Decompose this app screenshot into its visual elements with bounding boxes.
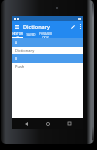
button[interactable]: Edit bbox=[69, 21, 77, 32]
staticText: HISTORY bbox=[12, 32, 23, 38]
button[interactable]: More options bbox=[77, 21, 83, 32]
button[interactable]: Recent apps bbox=[62, 118, 76, 129]
staticText: Push bbox=[15, 64, 25, 69]
button[interactable]: Navigation menu bbox=[13, 21, 21, 32]
button[interactable]: Push bbox=[12, 63, 83, 70]
staticText: PHRASEBOOK bbox=[38, 32, 53, 38]
staticText: SAVED bbox=[26, 33, 36, 37]
staticText: Dictionary bbox=[23, 23, 50, 30]
staticText: A bbox=[15, 41, 18, 45]
button[interactable]: Back bbox=[19, 118, 33, 129]
button[interactable]: Home bbox=[41, 118, 55, 129]
button[interactable]: HISTORY bbox=[12, 32, 23, 38]
staticText: B bbox=[15, 57, 18, 61]
button[interactable]: B bbox=[12, 54, 83, 63]
button[interactable]: SAVED bbox=[23, 32, 38, 38]
button[interactable]: Dictionary bbox=[12, 47, 83, 54]
button[interactable]: PHRASEBOOK bbox=[38, 32, 53, 38]
button[interactable]: A bbox=[12, 38, 83, 47]
staticText: Dictionary bbox=[15, 48, 35, 53]
